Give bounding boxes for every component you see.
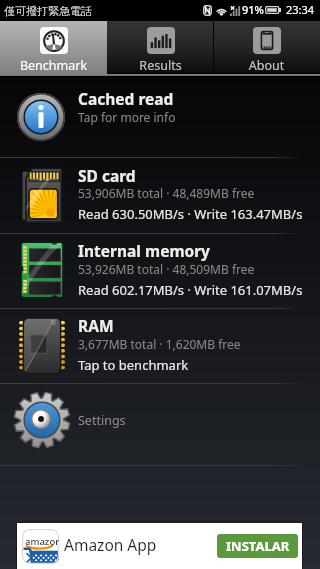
staticText: Internal memory — [78, 240, 210, 261]
staticText: 僅可撥打緊急電話 — [4, 4, 92, 18]
staticText: Cached read — [78, 88, 174, 109]
button[interactable] — [213, 21, 320, 74]
staticText: Benchmark — [0, 57, 107, 74]
staticText: SD card — [78, 165, 136, 186]
staticText: 23:34 — [286, 2, 315, 17]
staticText: About — [213, 57, 320, 74]
button[interactable] — [0, 383, 320, 465]
staticText: INSTALAR — [226, 537, 290, 555]
button[interactable]: INSTALAR — [217, 534, 298, 558]
button[interactable] — [0, 233, 320, 308]
button[interactable]: amazon — [17, 523, 302, 569]
staticText: amazon — [25, 535, 59, 548]
staticText: Read 630.50MB/s · Write 163.47MB/s — [78, 205, 303, 223]
staticText: Settings — [78, 412, 126, 429]
staticText: RAM — [78, 315, 114, 336]
button[interactable] — [0, 158, 320, 233]
staticText: 53,926MB total · 48,509MB free — [78, 261, 255, 277]
button[interactable] — [107, 21, 214, 74]
staticText: 91% — [242, 2, 264, 17]
button[interactable] — [0, 21, 107, 74]
button[interactable] — [0, 308, 320, 383]
staticText: Tap for more info — [78, 109, 176, 125]
staticText: 53,906MB total · 48,489MB free — [78, 185, 255, 201]
staticText: Amazon App — [64, 534, 157, 555]
staticText: Tap to benchmark — [78, 356, 189, 374]
staticText: Results — [107, 57, 214, 74]
staticText: Read 602.17MB/s · Write 161.07MB/s — [78, 281, 303, 299]
button[interactable] — [0, 77, 320, 158]
staticText: 3,677MB total · 1,620MB free — [78, 336, 241, 352]
